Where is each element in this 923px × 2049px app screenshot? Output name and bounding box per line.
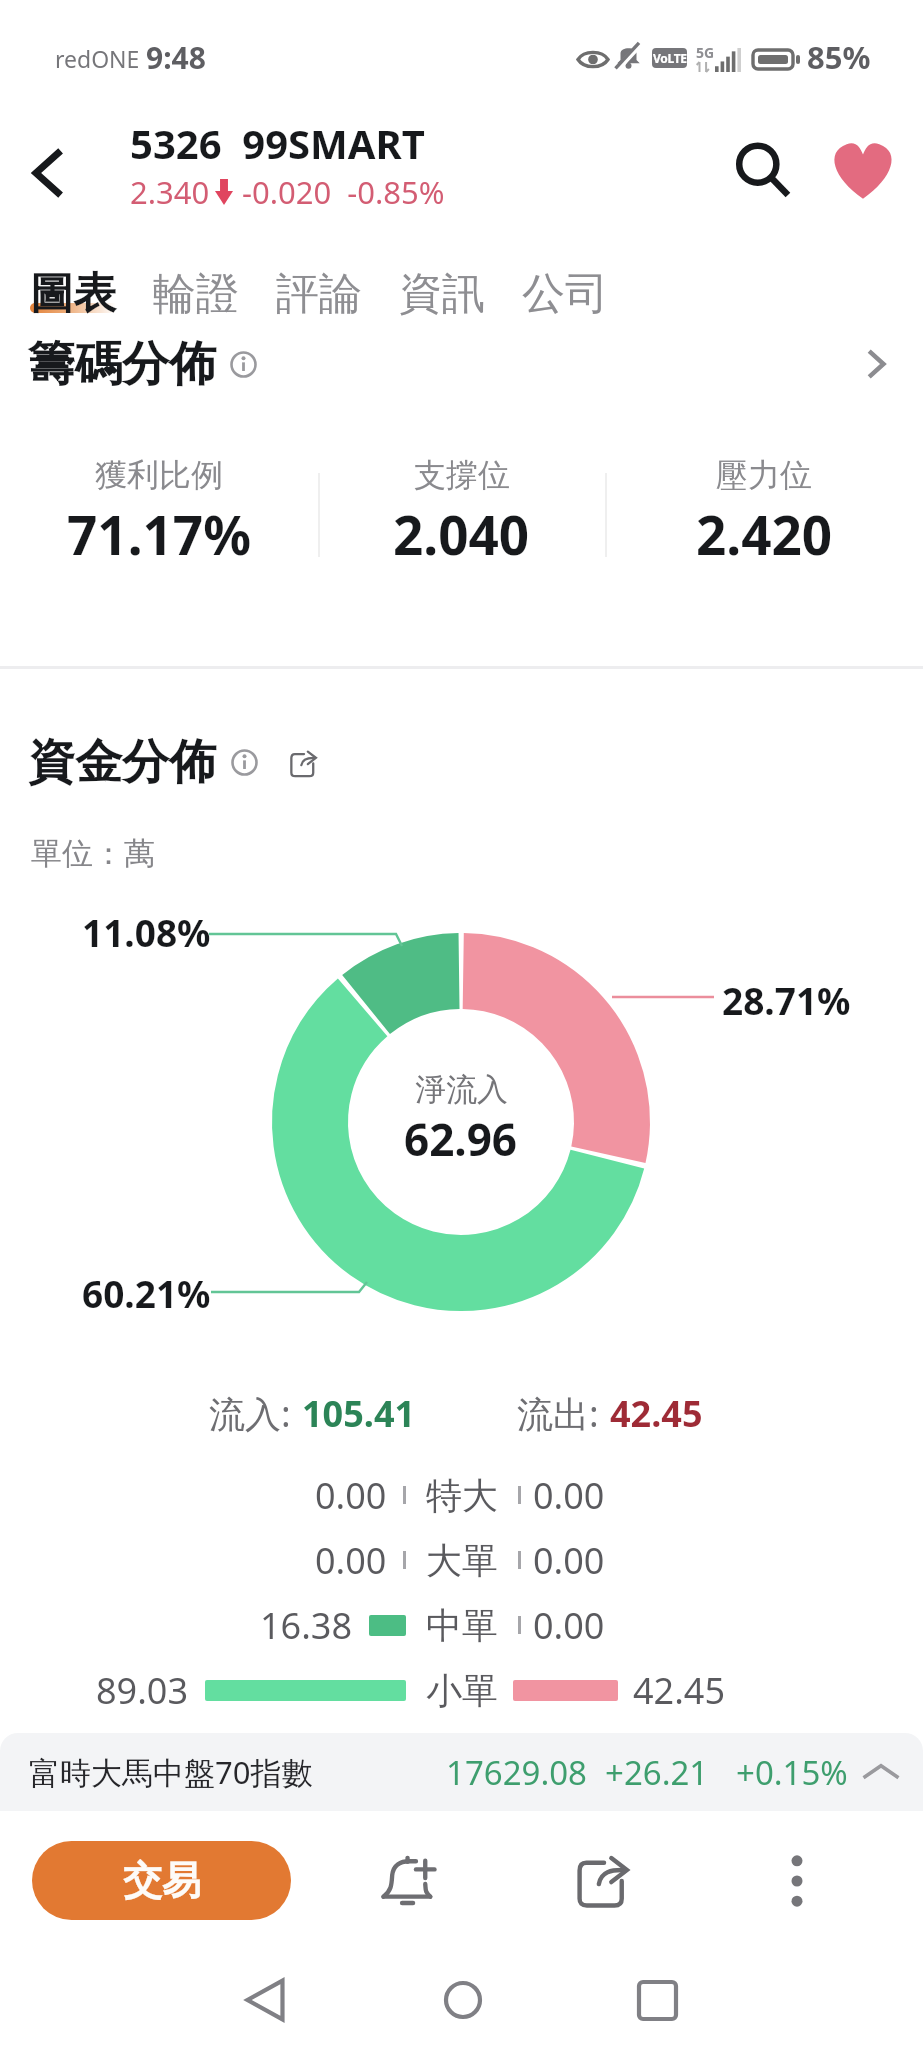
staticText: 0.00 bbox=[315, 1471, 387, 1520]
staticText: 獲利比例 bbox=[95, 455, 223, 495]
staticText: 支撐位 bbox=[414, 455, 510, 495]
staticText: 62.96 bbox=[404, 1109, 518, 1169]
staticText: 105.41 bbox=[302, 1389, 416, 1438]
button[interactable]: Share bbox=[281, 741, 325, 785]
staticText: 0.00 bbox=[533, 1536, 605, 1585]
staticText: 壓力位 bbox=[716, 455, 812, 495]
button[interactable]: Favorite bbox=[820, 127, 906, 213]
staticText: +0.15% bbox=[736, 1750, 848, 1795]
button[interactable]: 籌碼分佈 details bbox=[0, 331, 923, 397]
button[interactable]: 輪證 bbox=[153, 267, 276, 321]
staticText: 淨流入 bbox=[415, 1070, 508, 1109]
staticText: 流出: bbox=[517, 1389, 599, 1438]
button[interactable]: Recents bbox=[608, 1957, 706, 2043]
button[interactable]: Share bbox=[553, 1836, 653, 1926]
staticText: +26.21 bbox=[605, 1750, 709, 1795]
staticText: 11.08% bbox=[82, 907, 211, 957]
staticText: 中單 bbox=[426, 1603, 498, 1648]
staticText: 2.340 bbox=[130, 171, 210, 213]
staticText: 17629.08 bbox=[446, 1750, 587, 1795]
staticText: 圖表 bbox=[30, 267, 116, 321]
staticText: 2.420 bbox=[696, 498, 833, 570]
button[interactable]: 支撐位 bbox=[318, 455, 605, 570]
button[interactable]: 評論 bbox=[276, 267, 399, 321]
button[interactable]: Price alert bbox=[359, 1836, 459, 1926]
staticText: 2.040 bbox=[393, 498, 530, 570]
staticText: 9:48 bbox=[146, 37, 206, 78]
staticText: 流入: bbox=[209, 1389, 291, 1438]
staticText: 籌碼分佈 bbox=[28, 335, 216, 394]
staticText: 42.45 bbox=[633, 1666, 726, 1715]
button[interactable]: 壓力位 bbox=[605, 455, 923, 570]
staticText: 0.00 bbox=[315, 1536, 387, 1585]
staticText: 5G bbox=[696, 43, 715, 62]
staticText: 89.03 bbox=[96, 1666, 189, 1715]
staticText: redONE bbox=[55, 43, 140, 74]
staticText: 交易 bbox=[123, 1856, 201, 1905]
staticText: 28.71% bbox=[722, 975, 851, 1025]
button[interactable]: 富時大馬中盤70指數 bbox=[0, 1733, 923, 1811]
staticText: 16.38 bbox=[260, 1601, 353, 1650]
staticText: -0.020 -0.85% bbox=[242, 171, 445, 213]
staticText: 71.17% bbox=[67, 498, 251, 570]
button[interactable]: Back bbox=[216, 1957, 314, 2043]
button[interactable]: 獲利比例 bbox=[0, 455, 318, 570]
button[interactable]: 交易 bbox=[32, 1841, 291, 1920]
button[interactable]: Back bbox=[0, 109, 96, 237]
staticText: 60.21% bbox=[82, 1268, 211, 1318]
staticText: 富時大馬中盤70指數 bbox=[29, 1751, 313, 1793]
staticText: 資訊 bbox=[399, 267, 485, 321]
staticText: 42.45 bbox=[610, 1389, 703, 1438]
button[interactable]: Home bbox=[414, 1957, 512, 2043]
staticText: 輪證 bbox=[153, 267, 239, 321]
button[interactable]: 資訊 bbox=[399, 267, 522, 321]
staticText: 評論 bbox=[276, 267, 362, 321]
staticText: VoLTE bbox=[653, 50, 687, 66]
staticText: 小單 bbox=[426, 1668, 498, 1713]
staticText: 大單 bbox=[426, 1538, 498, 1583]
staticText: 0.00 bbox=[533, 1601, 605, 1650]
staticText: 公司 bbox=[522, 267, 608, 321]
staticText: 85% bbox=[807, 36, 871, 78]
button[interactable]: Search bbox=[720, 127, 806, 213]
staticText: 單位：萬 bbox=[31, 834, 155, 873]
staticText: 資金分佈 bbox=[28, 733, 216, 792]
button[interactable]: 圖表 bbox=[30, 267, 153, 321]
staticText: 5326 99SMART bbox=[130, 116, 425, 170]
button[interactable]: 公司 bbox=[522, 267, 645, 321]
staticText: 特大 bbox=[426, 1473, 498, 1518]
staticText: 0.00 bbox=[533, 1471, 605, 1520]
button[interactable]: More options bbox=[747, 1836, 847, 1926]
